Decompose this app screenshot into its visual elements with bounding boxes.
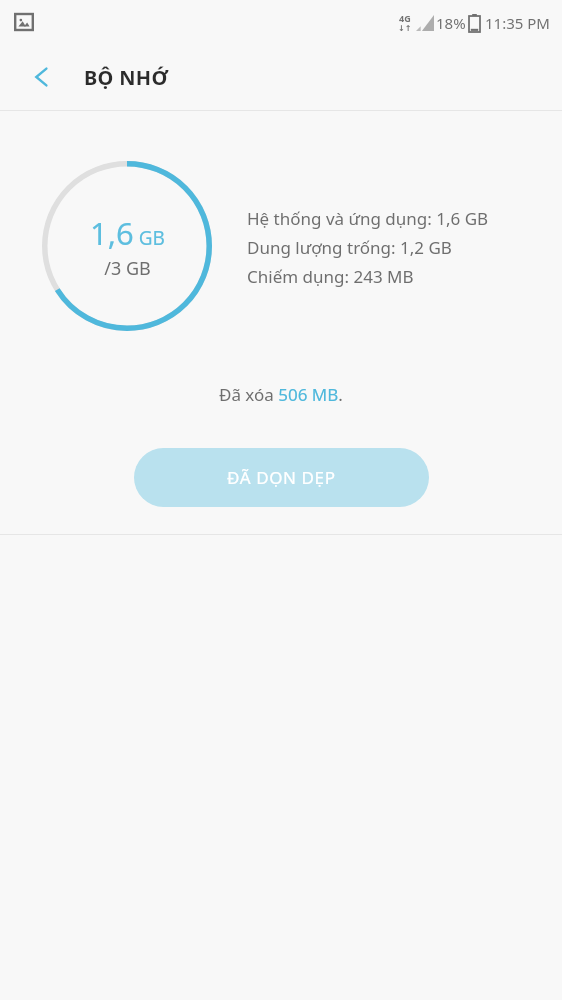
button[interactable]: ĐÃ DỌN DẸP bbox=[134, 448, 429, 507]
button[interactable]: Back bbox=[22, 57, 62, 97]
staticText: ĐÃ DỌN DẸP bbox=[227, 466, 336, 489]
staticText: 18% bbox=[436, 13, 466, 33]
staticText: Đã xóa 506 MB. bbox=[219, 383, 343, 406]
staticText: Chiếm dụng: 243 MB bbox=[247, 265, 414, 288]
staticText: Hệ thống và ứng dụng: 1,6 GB bbox=[247, 207, 489, 230]
staticText: 1,6 GB bbox=[90, 212, 165, 254]
staticText: /3 GB bbox=[104, 256, 151, 281]
staticText: BỘ NHỚ bbox=[84, 64, 169, 91]
staticText: Dung lượng trống: 1,2 GB bbox=[247, 236, 452, 259]
staticText: 4G bbox=[399, 12, 411, 24]
staticText: ↓↑ bbox=[398, 24, 412, 33]
staticText: 11:35 PM bbox=[485, 13, 550, 33]
